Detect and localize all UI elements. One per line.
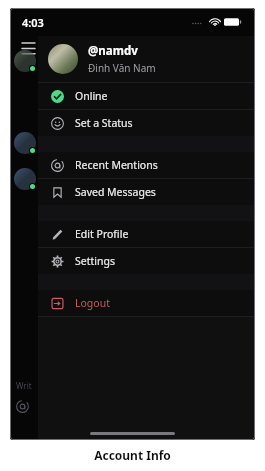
button[interactable]: Settings: [38, 248, 255, 274]
staticText: Writ: [16, 380, 32, 391]
button[interactable]: Recent Mentions: [38, 152, 255, 178]
button[interactable]: @namdv: [38, 36, 255, 82]
staticText: Edit Profile: [75, 227, 129, 241]
button[interactable]: Edit Profile: [38, 221, 255, 247]
button[interactable]: Online: [38, 83, 255, 109]
staticText: Online: [75, 89, 108, 103]
button[interactable]: Set a Status: [38, 110, 255, 136]
staticText: Saved Messages: [75, 185, 156, 199]
staticText: Logout: [75, 296, 110, 310]
staticText: Đinh Văn Nam: [88, 61, 156, 75]
staticText: Recent Mentions: [75, 158, 158, 172]
button[interactable]: Menu: [18, 38, 38, 58]
button[interactable]: Saved Messages: [38, 179, 255, 205]
staticText: 4:03: [22, 15, 44, 30]
staticText: Set a Status: [75, 116, 133, 130]
staticText: @namdv: [88, 43, 138, 59]
staticText: Account Info: [0, 447, 265, 463]
button[interactable]: Logout: [38, 290, 255, 316]
staticText: Settings: [75, 254, 115, 268]
